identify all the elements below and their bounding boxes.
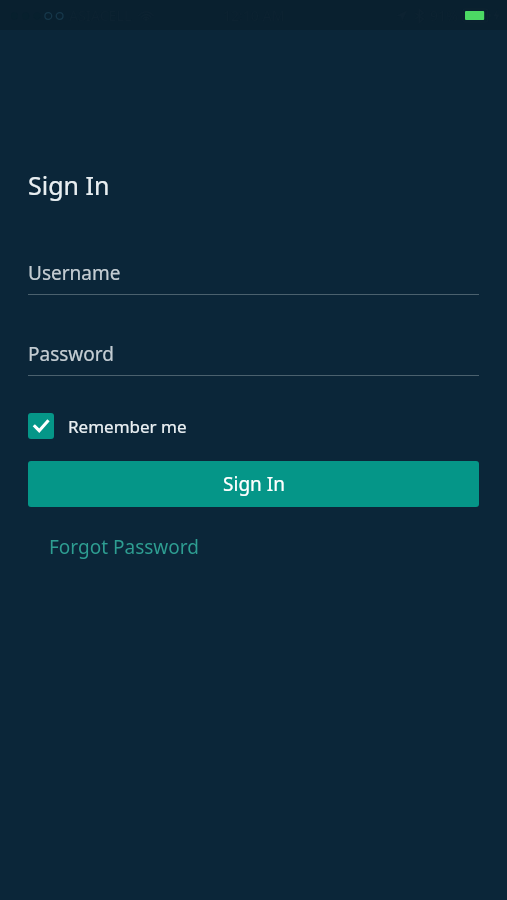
staticText: Username — [28, 260, 121, 286]
staticText: Password — [28, 341, 114, 367]
staticText: Remember me — [68, 415, 187, 438]
button[interactable]: Forgot Password — [28, 527, 199, 567]
button[interactable]: Sign In — [28, 461, 479, 507]
button[interactable]: Remember me — [28, 409, 187, 443]
staticText: Forgot Password — [49, 534, 199, 560]
staticText: Sign In — [28, 168, 110, 202]
staticText: Sign In — [223, 471, 285, 497]
